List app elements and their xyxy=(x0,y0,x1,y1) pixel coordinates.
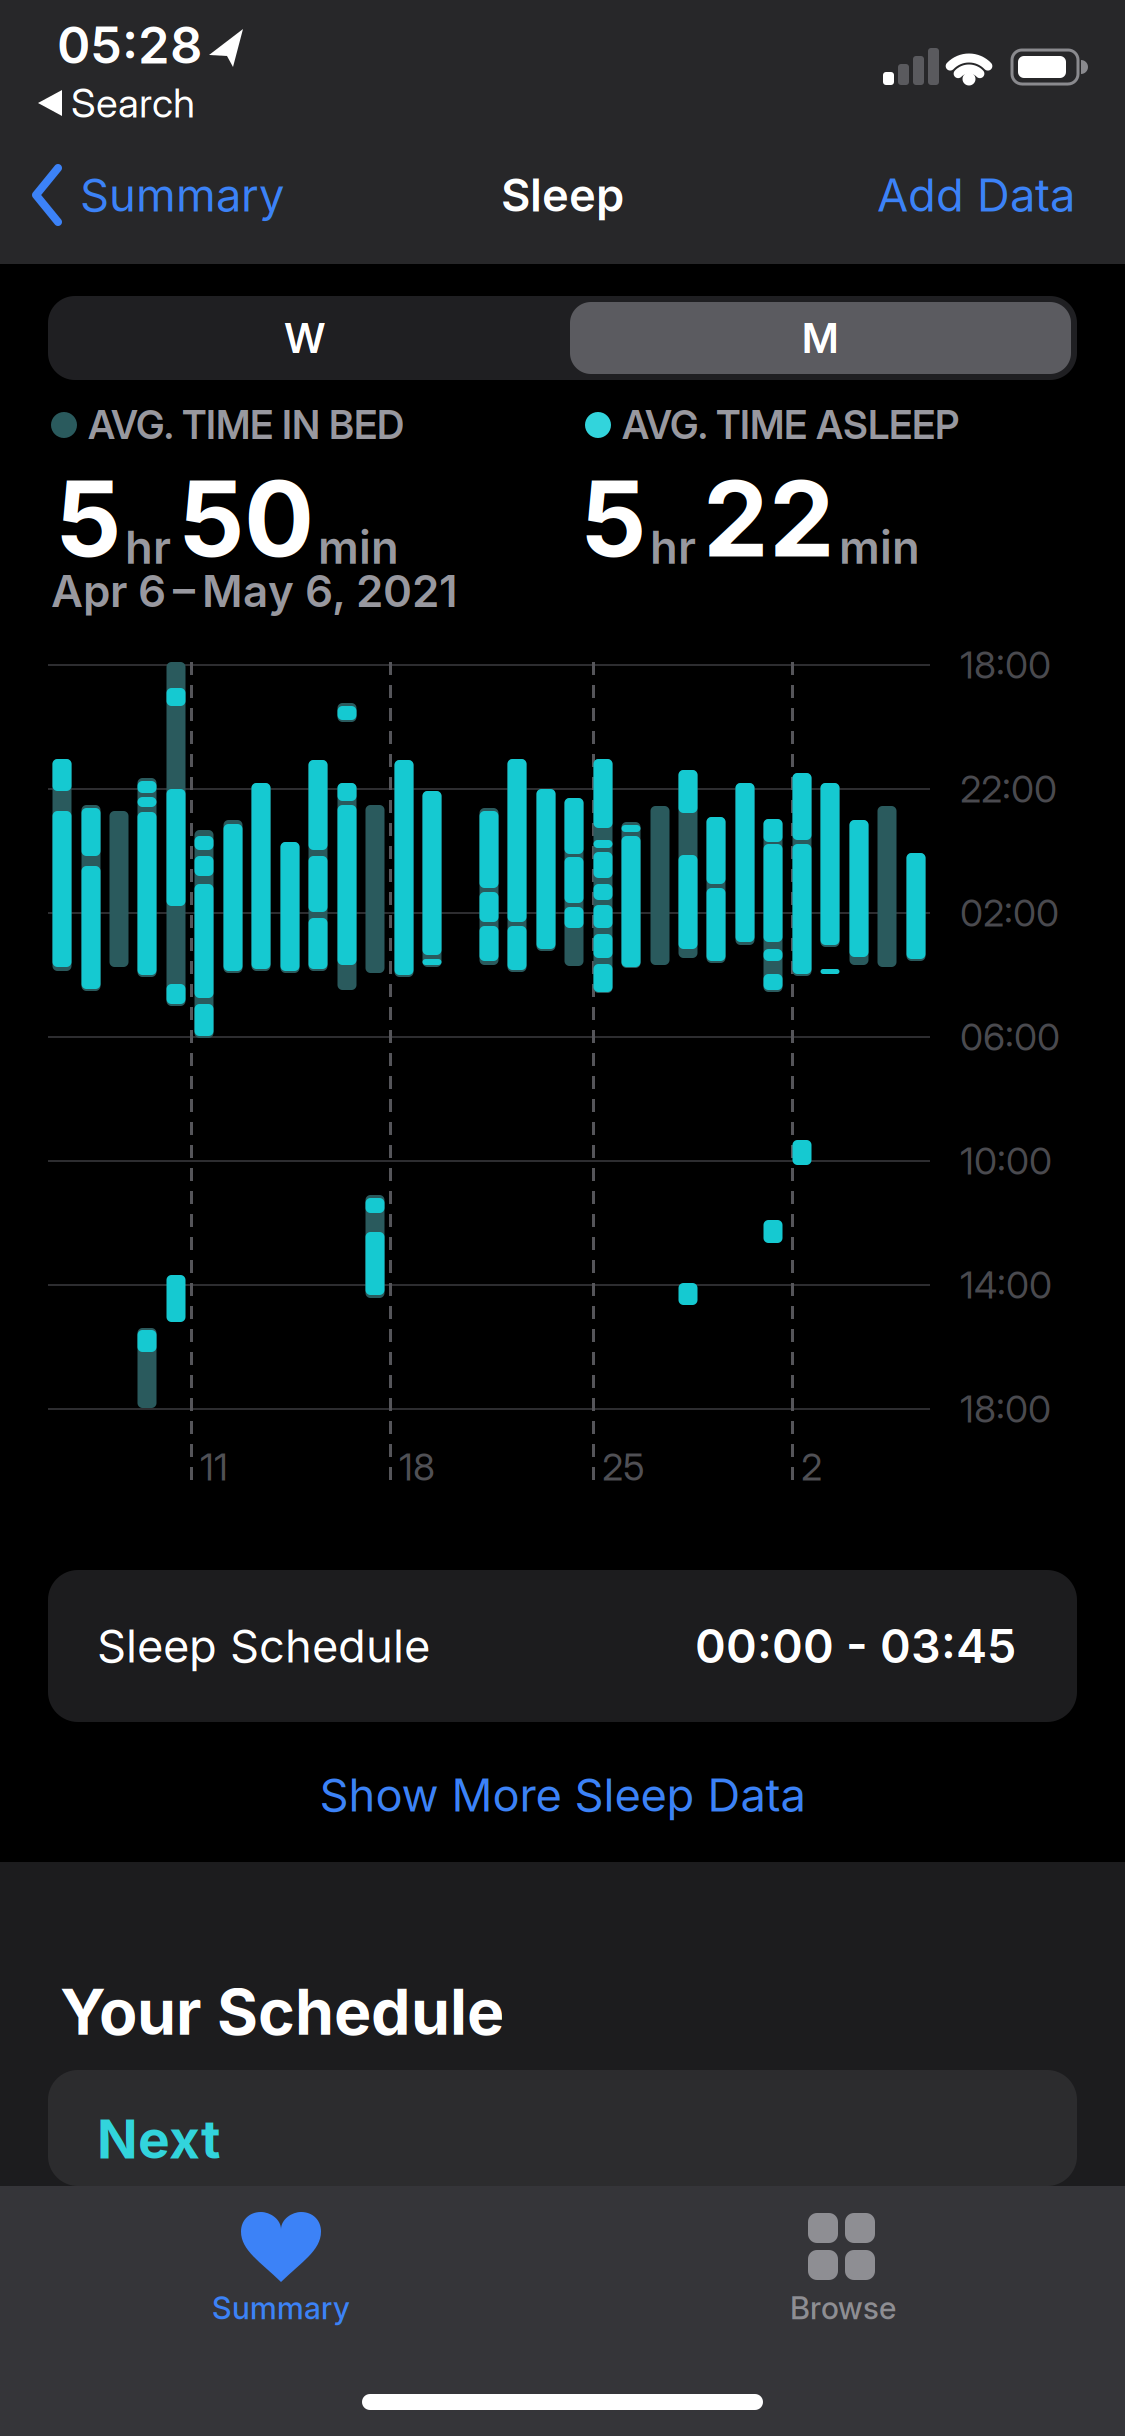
staticText: 00:00 - 03:45 xyxy=(695,1618,1016,1674)
staticText: Browse xyxy=(790,2290,896,2326)
staticText: AVG. TIME ASLEEP xyxy=(622,402,959,448)
button[interactable]: M xyxy=(570,302,1071,374)
button[interactable]: Summary xyxy=(36,164,284,226)
staticText: Sleep Schedule xyxy=(97,1619,430,1673)
staticText: 22:00 xyxy=(960,767,1057,811)
staticText: 18:00 xyxy=(960,1387,1051,1431)
staticText: 22 xyxy=(703,457,835,580)
button[interactable]: Browse xyxy=(562,2212,1124,2332)
button[interactable]: Next xyxy=(48,2070,1077,2186)
staticText: W xyxy=(284,314,325,362)
staticText: 14:00 xyxy=(960,1263,1052,1307)
staticText: 18:00 xyxy=(960,643,1051,687)
staticText: Sleep xyxy=(501,168,624,222)
button[interactable]: Summary xyxy=(0,2212,562,2332)
staticText: 05:28 xyxy=(57,15,202,75)
button[interactable]: Search xyxy=(38,75,195,131)
staticText: AVG. TIME IN BED xyxy=(88,402,404,448)
staticText: Summary xyxy=(212,2290,350,2326)
button[interactable]: W xyxy=(48,296,562,380)
button[interactable]: Add Data xyxy=(877,168,1075,222)
staticText: 10:00 xyxy=(960,1139,1052,1183)
staticText: M xyxy=(802,314,839,362)
staticText: 02:00 xyxy=(960,891,1059,935)
staticText: Show More Sleep Data xyxy=(319,1768,805,1822)
staticText: 06:00 xyxy=(960,1015,1060,1059)
staticText: Summary xyxy=(80,168,284,222)
staticText: Apr 6 – May 6, 2021 xyxy=(51,565,458,617)
staticText: min xyxy=(318,520,399,574)
staticText: 11 xyxy=(200,1445,228,1489)
staticText: Next xyxy=(97,2107,221,2170)
staticText: 5 xyxy=(580,457,646,580)
staticText: 2 xyxy=(801,1445,822,1489)
staticText: 18 xyxy=(399,1445,435,1489)
staticText: 25 xyxy=(602,1445,645,1489)
staticText: hr xyxy=(650,520,696,574)
staticText: hr xyxy=(125,520,171,574)
button[interactable]: Sleep Schedule xyxy=(48,1570,1077,1722)
button[interactable]: Show More Sleep Data xyxy=(0,1764,1125,1826)
staticText: min xyxy=(839,520,920,574)
staticText: Add Data xyxy=(877,168,1075,222)
staticText: 50 xyxy=(178,457,314,580)
staticText: Search xyxy=(71,79,195,127)
staticText: 5 xyxy=(55,457,121,580)
staticText: Your Schedule xyxy=(60,1975,504,2049)
